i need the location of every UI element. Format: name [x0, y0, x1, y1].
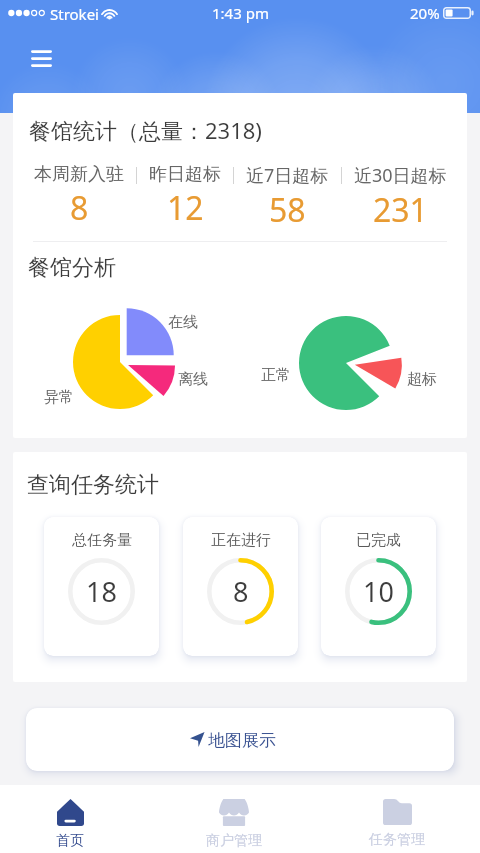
button[interactable]: 首页 [15, 785, 125, 853]
staticText: 餐馆统计（总量：2318) [29, 115, 262, 145]
staticText: 餐馆分析 [28, 254, 116, 282]
staticText: 离线 [178, 370, 208, 389]
button[interactable]: 地图展示 [26, 708, 454, 771]
staticText: 12 [167, 186, 204, 223]
button[interactable]: 任务管理 [342, 785, 452, 853]
staticText: 8 [233, 573, 249, 610]
staticText: Strokei [50, 4, 99, 24]
staticText: 首页 [56, 832, 84, 850]
staticText: 正在进行 [211, 531, 271, 550]
staticText: 8 [70, 186, 89, 223]
staticText: 任务管理 [369, 831, 425, 849]
staticText: 总任务量 [72, 531, 132, 550]
staticText: 本周新入驻 [34, 163, 124, 186]
button[interactable]: 已完成 [321, 517, 436, 656]
staticText: 在线 [168, 313, 198, 332]
button[interactable]: Menu [21, 40, 61, 80]
staticText: 查询任务统计 [27, 471, 159, 499]
staticText: 231 [373, 188, 428, 223]
staticText: 10 [363, 573, 394, 610]
staticText: 近30日超标 [354, 163, 447, 188]
button[interactable]: 总任务量 [44, 517, 159, 656]
staticText: 超标 [407, 370, 437, 389]
staticText: 1:43 pm [212, 3, 269, 23]
staticText: 近7日超标 [246, 163, 329, 188]
staticText: 已完成 [356, 531, 401, 550]
staticText: 正常 [261, 366, 291, 385]
staticText: 异常 [44, 388, 74, 407]
button[interactable]: 正在进行 [183, 517, 298, 656]
staticText: 昨日超标 [149, 163, 221, 186]
button[interactable]: 商户管理 [179, 785, 289, 853]
staticText: 商户管理 [206, 832, 262, 850]
staticText: 18 [86, 573, 117, 610]
staticText: 20% [410, 3, 440, 23]
staticText: 地图展示 [208, 730, 276, 751]
staticText: 58 [269, 188, 306, 223]
